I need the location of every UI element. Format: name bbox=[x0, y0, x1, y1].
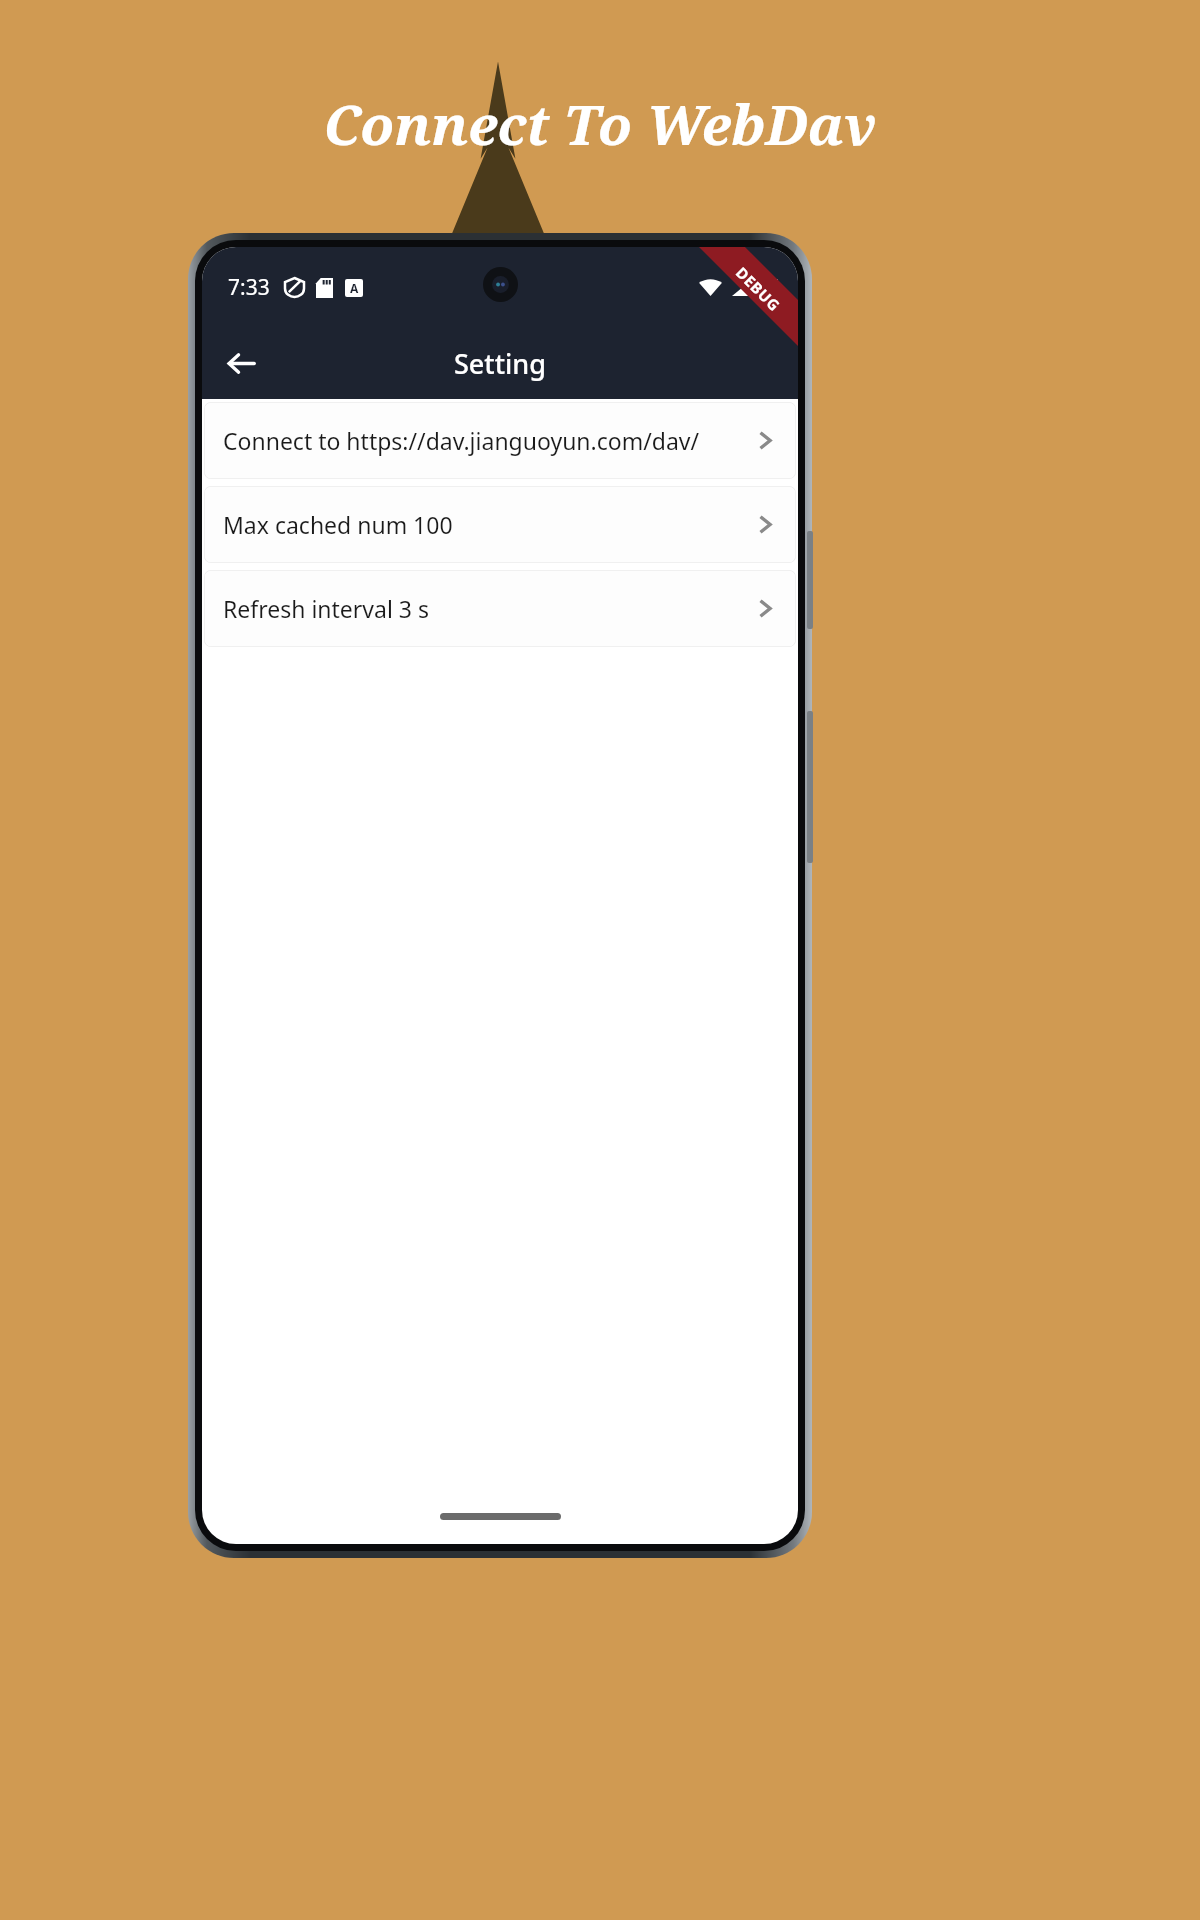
staticText: Connect To WebDav bbox=[323, 86, 877, 161]
staticText: DEBUG bbox=[732, 262, 785, 315]
button[interactable]: Connect to https://dav.jianguoyun.com/da… bbox=[204, 402, 796, 479]
staticText: Connect to https://dav.jianguoyun.com/da… bbox=[223, 425, 754, 456]
button[interactable]: Back bbox=[214, 336, 268, 390]
staticText: Refresh interval 3 s bbox=[223, 593, 754, 624]
staticText: A bbox=[350, 280, 359, 296]
button[interactable]: Max cached num 100 bbox=[204, 486, 796, 563]
button[interactable]: Refresh interval 3 s bbox=[204, 570, 796, 647]
staticText: Max cached num 100 bbox=[223, 509, 754, 540]
staticText: 7:33 bbox=[228, 273, 270, 302]
staticText: Setting bbox=[454, 345, 546, 382]
